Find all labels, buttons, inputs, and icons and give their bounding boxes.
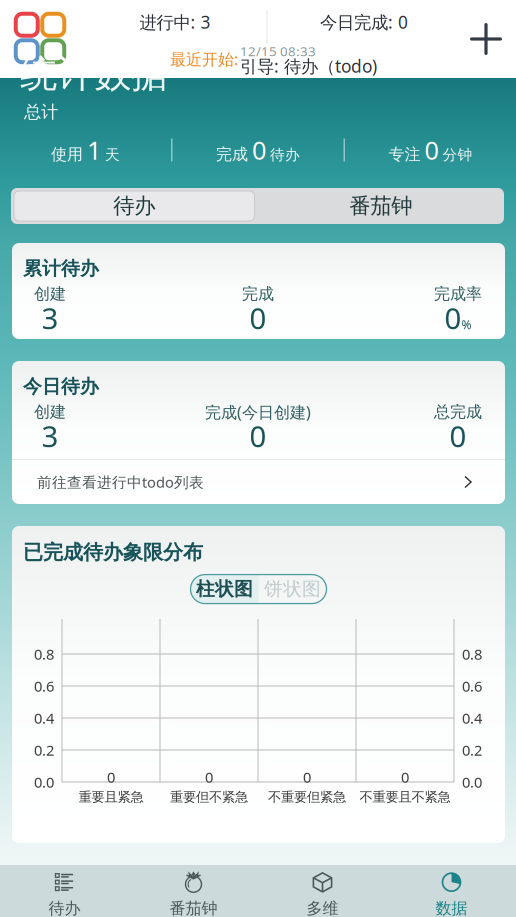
staticText: 已完成待办象限分布: [23, 540, 203, 565]
staticText: 统计数据: [20, 51, 168, 97]
staticText: 多维: [306, 899, 338, 917]
staticText: 3: [41, 298, 58, 337]
staticText: 0: [107, 767, 115, 787]
staticText: 完成(今日创建): [205, 401, 311, 422]
staticText: 0.4: [462, 708, 482, 728]
staticText: 0.4: [34, 708, 54, 728]
staticText: 0: [424, 133, 438, 167]
staticText: 0.6: [462, 676, 482, 696]
staticText: 完成: [242, 284, 274, 304]
staticText: 分钟: [442, 146, 472, 164]
staticText: 使用: [51, 145, 83, 164]
staticText: 0: [249, 298, 266, 337]
staticText: 番茄钟: [169, 899, 217, 917]
button[interactable]: 前往查看进行中todo列表: [12, 460, 505, 504]
staticText: 番茄钟: [349, 193, 412, 219]
staticText: 柱状图: [196, 578, 253, 600]
staticText: 重要但不紧急: [170, 789, 248, 805]
button[interactable]: 柱状图: [190, 575, 258, 604]
staticText: 完成: [216, 145, 248, 164]
button[interactable]: 番茄钟: [129, 865, 258, 917]
button[interactable]: 番茄钟: [257, 188, 504, 224]
staticText: 最近开始:: [170, 48, 238, 70]
staticText: 待办: [270, 146, 300, 164]
staticText: 不重要但紧急: [268, 789, 346, 805]
staticText: 创建: [34, 402, 66, 422]
staticText: 0: [444, 298, 461, 337]
staticText: 0.6: [34, 676, 54, 696]
staticText: 前往查看进行中todo列表: [37, 472, 204, 492]
staticText: 专注: [388, 145, 420, 164]
staticText: 3: [41, 416, 58, 455]
staticText: 0: [249, 416, 266, 455]
button[interactable]: 新建: [453, 6, 516, 72]
staticText: 重要且紧急: [78, 789, 143, 805]
staticText: 0.8: [34, 644, 54, 664]
staticText: 0.2: [34, 740, 54, 760]
staticText: 进行中: 3: [139, 10, 210, 33]
staticText: 0.8: [462, 644, 482, 664]
staticText: 不重要且不紧急: [359, 789, 450, 805]
staticText: 1: [87, 133, 101, 167]
staticText: 0.2: [462, 740, 482, 760]
button[interactable]: 待办: [11, 188, 257, 224]
staticText: 完成率: [434, 284, 482, 304]
button[interactable]: 数据: [387, 865, 516, 917]
staticText: 0: [401, 767, 409, 787]
button[interactable]: 多维: [258, 865, 387, 917]
staticText: 总计: [24, 101, 58, 123]
staticText: 引导: 待办（todo): [240, 54, 377, 77]
staticText: 累计待办: [23, 257, 99, 280]
staticText: 待办: [113, 193, 155, 219]
staticText: 0.0: [34, 772, 54, 792]
staticText: 0: [449, 416, 466, 455]
button[interactable]: 饼状图: [258, 575, 326, 604]
staticText: 待办: [48, 899, 80, 917]
staticText: 天: [105, 146, 120, 164]
staticText: 总完成: [434, 402, 482, 422]
staticText: 0.0: [462, 772, 482, 792]
staticText: 创建: [34, 284, 66, 304]
staticText: 今日待办: [23, 375, 99, 398]
staticText: 饼状图: [264, 578, 321, 600]
staticText: %: [461, 317, 471, 333]
staticText: 数据: [435, 899, 467, 917]
staticText: 今日完成: 0: [320, 10, 408, 33]
staticText: 0: [252, 133, 266, 167]
staticText: 0: [205, 767, 213, 787]
staticText: 0: [303, 767, 311, 787]
staticText: 12/15 08:33: [240, 42, 316, 60]
button[interactable]: 待办: [0, 865, 129, 917]
